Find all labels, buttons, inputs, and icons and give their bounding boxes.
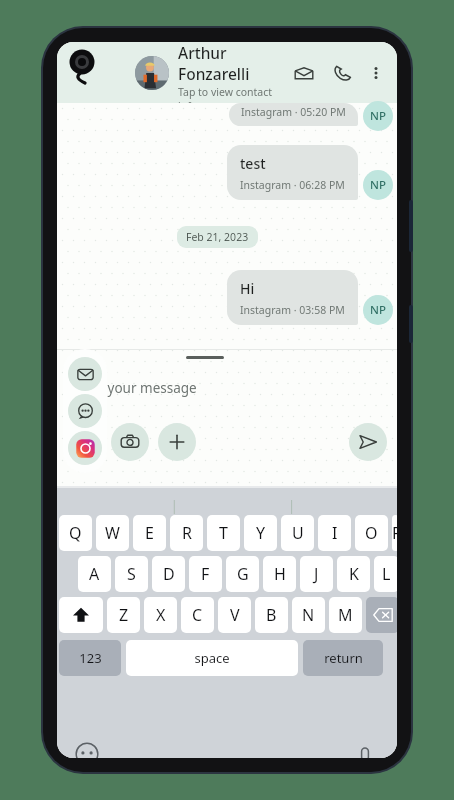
button[interactable]: 123 [59, 640, 121, 676]
staticText: J [314, 563, 319, 585]
button[interactable]: M [329, 597, 362, 633]
staticText: T [219, 522, 228, 544]
button[interactable]: Y [244, 515, 277, 551]
button[interactable]: I [318, 515, 351, 551]
staticText: P [392, 522, 397, 544]
button[interactable]: S [115, 556, 148, 592]
button[interactable]: P [392, 515, 397, 551]
button[interactable]: Camera [111, 423, 149, 461]
staticText: A [89, 563, 100, 585]
button[interactable]: Backspace [366, 597, 397, 633]
button[interactable]: E [133, 515, 166, 551]
button[interactable]: Email [287, 56, 321, 90]
staticText: return [324, 649, 363, 667]
button[interactable]: Send [349, 423, 387, 461]
staticText: Type your message [74, 379, 197, 397]
button[interactable]: L [374, 556, 397, 592]
button[interactable]: Z [107, 597, 140, 633]
button[interactable]: T [207, 515, 240, 551]
staticText: Instagram · 06:28 PM [240, 178, 345, 192]
button[interactable]: Email channel [68, 357, 102, 391]
staticText: B [266, 604, 277, 626]
staticText: H [274, 563, 286, 585]
button[interactable]: Q [59, 515, 92, 551]
button[interactable]: test [227, 145, 358, 200]
button[interactable]: space [126, 640, 298, 676]
button[interactable]: R [170, 515, 203, 551]
button[interactable]: J [300, 556, 333, 592]
button[interactable]: Chat channel [68, 394, 102, 428]
button[interactable]: C [181, 597, 214, 633]
button[interactable]: F [189, 556, 222, 592]
button[interactable]: Instagram channel [68, 431, 102, 465]
staticText: Y [256, 522, 266, 544]
staticText: O [365, 522, 378, 544]
button[interactable]: V [218, 597, 251, 633]
button[interactable]: Hi [227, 270, 358, 325]
staticText: W [105, 522, 120, 544]
staticText: E [145, 522, 154, 544]
staticText: NP [370, 177, 386, 193]
staticText: Hi [240, 279, 255, 298]
staticText: G [237, 563, 249, 585]
button[interactable]: NP [363, 295, 393, 325]
staticText: R [182, 522, 192, 544]
button[interactable]: N [292, 597, 325, 633]
staticText: Instagram · 03:58 PM [240, 303, 345, 317]
staticText: F [201, 563, 210, 585]
staticText: 123 [79, 649, 102, 667]
staticText: X [156, 604, 166, 626]
button[interactable]: A [78, 556, 111, 592]
button[interactable]: NP [363, 101, 393, 131]
button[interactable]: NP [363, 170, 393, 200]
staticText: V [230, 604, 240, 626]
button[interactable]: Instagram · 05:20 PM [229, 103, 358, 126]
staticText: NP [370, 302, 386, 318]
staticText: Feb 21, 2023 [186, 230, 249, 244]
button[interactable]: D [152, 556, 185, 592]
button[interactable]: K [337, 556, 370, 592]
staticText: N [302, 604, 315, 626]
staticText: L [382, 563, 391, 585]
staticText: M [338, 604, 353, 626]
staticText: NP [370, 108, 386, 124]
button[interactable]: H [263, 556, 296, 592]
button[interactable]: Call [325, 56, 359, 90]
staticText: K [349, 563, 359, 585]
staticText: I [332, 522, 338, 544]
button[interactable]: Type your message [57, 364, 397, 412]
button[interactable]: G [226, 556, 259, 592]
staticText: D [163, 563, 175, 585]
button[interactable]: return [303, 640, 383, 676]
staticText: U [292, 522, 304, 544]
button[interactable]: Arthur Fonzarelli [178, 42, 287, 103]
staticText: S [127, 563, 136, 585]
button[interactable]: Shift [59, 597, 103, 633]
button[interactable]: U [281, 515, 314, 551]
staticText: test [240, 154, 266, 173]
staticText: Z [119, 604, 129, 626]
staticText: Arthur Fonzarelli [178, 42, 287, 84]
staticText: C [192, 604, 203, 626]
staticText: Q [69, 522, 82, 544]
button[interactable]: More options [363, 60, 389, 86]
staticText: Tap to view contact info [178, 85, 287, 103]
staticText: Instagram · 05:20 PM [241, 105, 346, 119]
button[interactable]: B [255, 597, 288, 633]
staticText: space [194, 649, 230, 667]
button[interactable]: X [144, 597, 177, 633]
button[interactable]: O [355, 515, 388, 551]
button[interactable]: Add attachment [158, 423, 196, 461]
button[interactable]: W [96, 515, 129, 551]
